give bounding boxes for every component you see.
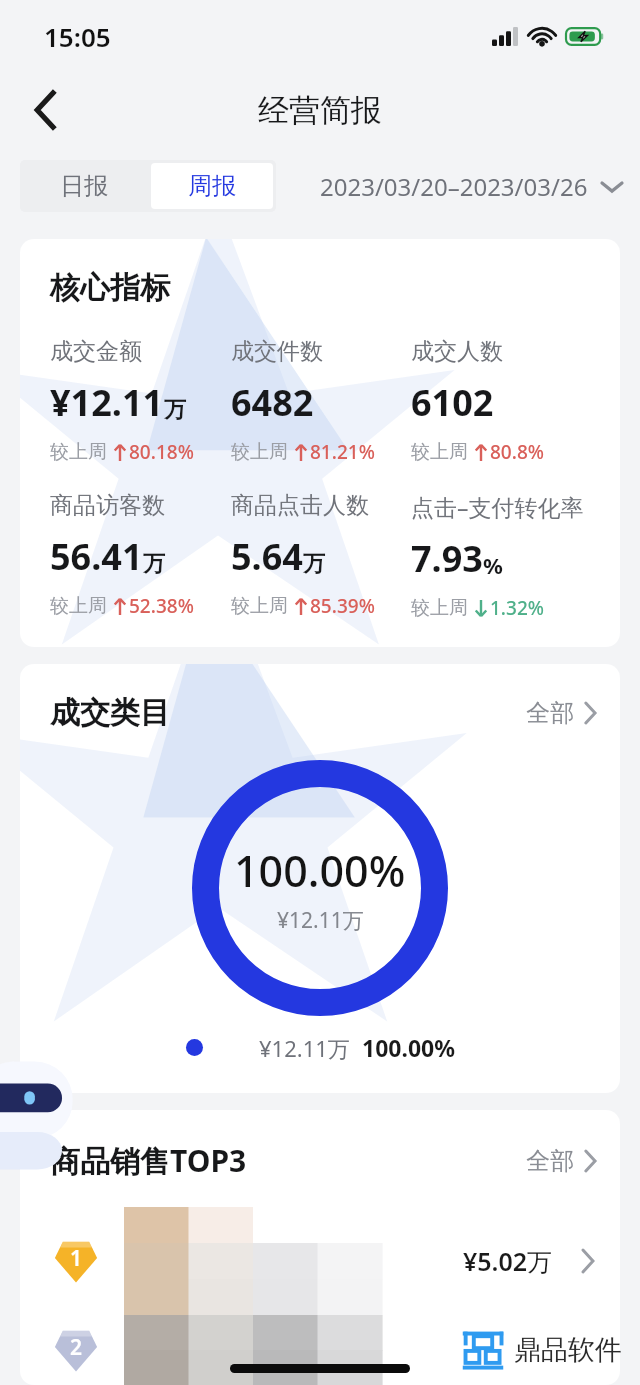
staticText: 2 <box>70 1333 83 1362</box>
staticText: ¥5.02万 <box>463 1244 553 1278</box>
button[interactable]: 1 <box>20 1207 620 1315</box>
button[interactable]: 成交件数 <box>231 337 411 465</box>
button[interactable]: 周报 <box>151 163 273 209</box>
button[interactable]: Assistant <box>0 1055 88 1165</box>
staticText: 商品销售TOP3 <box>50 1140 247 1181</box>
staticText: 全部 <box>526 698 574 728</box>
staticText: ¥12.11 <box>50 378 164 427</box>
staticText: 较上周 <box>50 440 107 464</box>
staticText: 100.00% <box>362 1032 455 1063</box>
button[interactable]: 全部 <box>526 1146 596 1176</box>
staticText: 5.64 <box>231 532 303 581</box>
button[interactable]: 商品点击人数 <box>231 491 411 619</box>
staticText: 成交件数 <box>231 337 323 366</box>
staticText: 52.38% <box>129 593 194 619</box>
button[interactable]: 2023/03/20–2023/03/26 <box>320 170 622 203</box>
staticText: 万 <box>143 550 165 578</box>
staticText: 85.39% <box>310 593 375 619</box>
staticText: 万 <box>303 550 325 578</box>
button[interactable]: 成交金额 <box>50 337 231 465</box>
staticText: 成交类目 <box>50 694 170 732</box>
staticText: 2023/03/20–2023/03/26 <box>320 170 588 203</box>
staticText: 商品访客数 <box>50 491 165 520</box>
staticText: 81.21% <box>310 439 375 465</box>
staticText: 80.18% <box>129 439 194 465</box>
staticText: 商品点击人数 <box>231 491 369 520</box>
staticText: 较上周 <box>231 440 288 464</box>
staticText: 万 <box>164 396 186 424</box>
staticText: % <box>483 550 503 580</box>
staticText: 100.00% <box>234 841 406 900</box>
staticText: 较上周 <box>50 594 107 618</box>
staticText: 周报 <box>188 171 236 201</box>
button[interactable]: Back <box>18 82 74 138</box>
button[interactable]: 商品访客数 <box>50 491 231 619</box>
button[interactable]: 全部 <box>526 698 596 728</box>
staticText: 成交金额 <box>50 337 142 366</box>
staticText: 核心指标 <box>50 269 170 307</box>
button[interactable]: 成交人数 <box>411 337 598 465</box>
button[interactable]: 2 <box>20 1315 620 1385</box>
staticText: 点击–支付转化率 <box>411 491 584 522</box>
staticText: 较上周 <box>411 440 468 464</box>
staticText: 成交人数 <box>411 337 503 366</box>
staticText: 15:05 <box>44 19 111 54</box>
staticText: 80.8% <box>490 439 544 465</box>
staticText: 1.32% <box>490 595 544 621</box>
staticText: 6482 <box>231 378 314 427</box>
staticText: 6102 <box>411 378 494 427</box>
staticText: 1 <box>70 1244 83 1273</box>
staticText: 经营简报 <box>258 91 382 130</box>
staticText: 鼎品软件 <box>514 1333 622 1367</box>
staticText: ¥12.11万 <box>259 1033 350 1063</box>
staticText: 较上周 <box>231 594 288 618</box>
button[interactable]: 日报 <box>20 160 148 212</box>
button[interactable]: 点击–支付转化率 <box>411 491 598 621</box>
staticText: 7.93 <box>411 534 483 583</box>
staticText: 全部 <box>526 1146 574 1176</box>
staticText: 日报 <box>60 171 108 201</box>
staticText: ¥12.11万 <box>277 906 364 935</box>
staticText: 56.41 <box>50 532 143 581</box>
staticText: 较上周 <box>411 596 468 620</box>
